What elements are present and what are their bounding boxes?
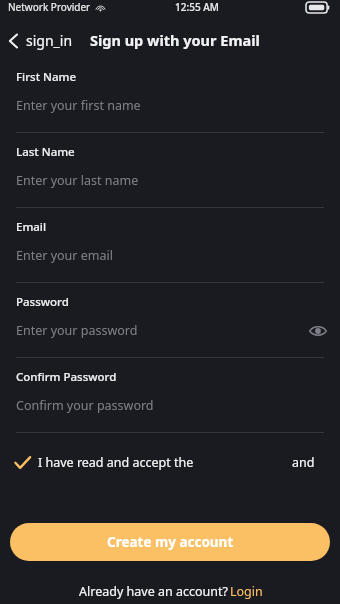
staticText: 12:55 AM <box>175 0 219 14</box>
button[interactable]: Login <box>230 583 263 600</box>
staticText: and <box>292 454 315 471</box>
staticText: Last Name <box>16 144 75 160</box>
button[interactable]: Enter your email <box>0 235 340 282</box>
staticText: Enter your first name <box>16 97 141 114</box>
staticText: Enter your email <box>16 247 113 264</box>
button[interactable]: Enter your password <box>0 310 340 357</box>
staticText: sign_in <box>26 31 73 50</box>
button[interactable]: Enter your first name <box>0 85 340 132</box>
staticText: Enter your last name <box>16 172 139 189</box>
staticText: Confirm your password <box>16 397 154 414</box>
button[interactable]: Back to sign_in <box>0 27 79 54</box>
staticText: Password <box>16 294 69 310</box>
button[interactable]: Confirm your password <box>0 385 340 432</box>
staticText: Network Provider <box>8 0 91 14</box>
button[interactable]: Create my account <box>10 523 330 561</box>
staticText: Create my account <box>107 533 234 551</box>
staticText: Sign up with your Email <box>90 30 260 50</box>
staticText: Email <box>16 219 47 235</box>
staticText: I have read and accept the <box>38 454 194 471</box>
staticText: Confirm Password <box>16 369 117 385</box>
button[interactable]: Show password <box>308 321 328 341</box>
staticText: Enter your password <box>16 322 138 339</box>
staticText: Already have an account? <box>77 583 230 600</box>
button[interactable]: I have read and accept the <box>0 450 340 475</box>
staticText: First Name <box>16 69 77 85</box>
button[interactable]: Enter your last name <box>0 160 340 207</box>
